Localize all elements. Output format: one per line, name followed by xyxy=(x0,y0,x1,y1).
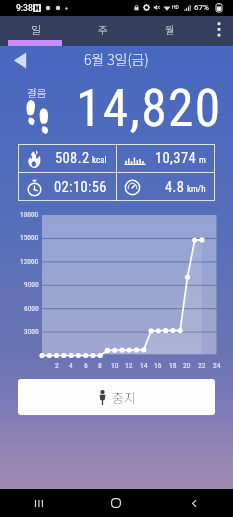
staticText: HD xyxy=(172,4,179,10)
staticText: 508.2 xyxy=(55,150,90,167)
staticText: 14,820 xyxy=(76,78,222,138)
button[interactable]: 10,374 xyxy=(117,144,216,173)
staticText: 02:10:56 xyxy=(54,179,107,196)
staticText: 주 xyxy=(98,22,108,37)
button[interactable]: Back xyxy=(155,489,233,517)
staticText: 9:38 xyxy=(16,3,33,13)
staticText: 14 xyxy=(140,361,148,370)
staticText: 월 xyxy=(165,22,175,37)
staticText: 22 xyxy=(198,361,206,370)
staticText: 10,374 xyxy=(155,150,197,167)
button[interactable]: 일 xyxy=(2,16,69,46)
button[interactable]: 4.8 xyxy=(117,173,216,202)
staticText: 4.8 xyxy=(165,179,185,196)
button[interactable]: 주 xyxy=(69,16,136,46)
staticText: 중지 xyxy=(112,388,136,407)
staticText: km/h xyxy=(187,184,206,195)
staticText: 9000 xyxy=(24,280,39,289)
staticText: 18000 xyxy=(20,210,39,219)
staticText: 일 xyxy=(31,22,41,37)
staticText: 6000 xyxy=(24,304,39,313)
staticText: 67% xyxy=(194,3,209,12)
button[interactable]: 월 xyxy=(136,16,203,46)
button[interactable]: 508.2 xyxy=(18,144,117,173)
staticText: 2 xyxy=(55,361,59,370)
staticText: 4 xyxy=(69,361,73,370)
button[interactable]: Home xyxy=(77,489,155,517)
staticText: 24 xyxy=(213,361,221,370)
staticText: 6월 3일(금) xyxy=(84,49,149,69)
staticText: 16 xyxy=(154,361,162,370)
staticText: 걸음 xyxy=(27,85,47,100)
button[interactable]: 중지 xyxy=(18,379,215,415)
button[interactable]: More options xyxy=(204,16,233,46)
staticText: 8 xyxy=(98,361,102,370)
staticText: 10 xyxy=(111,361,119,370)
staticText: 6 xyxy=(84,361,88,370)
staticText: 18 xyxy=(169,361,177,370)
button[interactable]: 02:10:56 xyxy=(18,173,117,202)
button[interactable]: Previous day xyxy=(9,49,31,71)
staticText: m xyxy=(199,155,206,166)
staticText: 20 xyxy=(183,361,191,370)
button[interactable]: Recents xyxy=(0,489,77,517)
staticText: kcal xyxy=(92,155,107,166)
staticText: 3000 xyxy=(24,327,39,336)
staticText: 12 xyxy=(125,361,133,370)
staticText: 12000 xyxy=(20,257,39,266)
staticText: 15000 xyxy=(20,233,39,242)
